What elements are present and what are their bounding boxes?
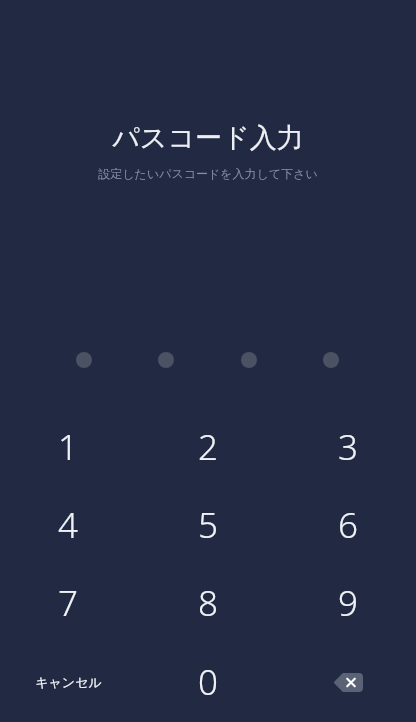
staticText: 設定したいパスコードを入力して下さい [98, 166, 318, 181]
staticText: キャンセル [35, 674, 102, 690]
button[interactable]: 7 [0, 564, 136, 642]
button[interactable]: 8 [136, 564, 280, 642]
staticText: 3 [338, 423, 358, 471]
staticText: 8 [198, 579, 218, 627]
button[interactable]: 6 [280, 486, 416, 564]
staticText: 1 [58, 423, 78, 471]
button[interactable]: 1 [0, 408, 136, 486]
button[interactable]: 2 [136, 408, 280, 486]
staticText: 0 [198, 658, 218, 706]
staticText: 4 [58, 501, 78, 549]
button[interactable]: Backspace [280, 642, 416, 722]
staticText: 6 [338, 501, 358, 549]
staticText: パスコード入力 [112, 121, 304, 155]
staticText: 5 [198, 501, 218, 549]
button[interactable]: 0 [136, 642, 280, 722]
button[interactable]: 4 [0, 486, 136, 564]
staticText: 7 [58, 579, 78, 627]
staticText: 2 [198, 423, 218, 471]
button[interactable]: 5 [136, 486, 280, 564]
button[interactable]: キャンセル [0, 642, 136, 722]
button[interactable]: 9 [280, 564, 416, 642]
button[interactable]: 3 [280, 408, 416, 486]
staticText: 9 [338, 579, 358, 627]
